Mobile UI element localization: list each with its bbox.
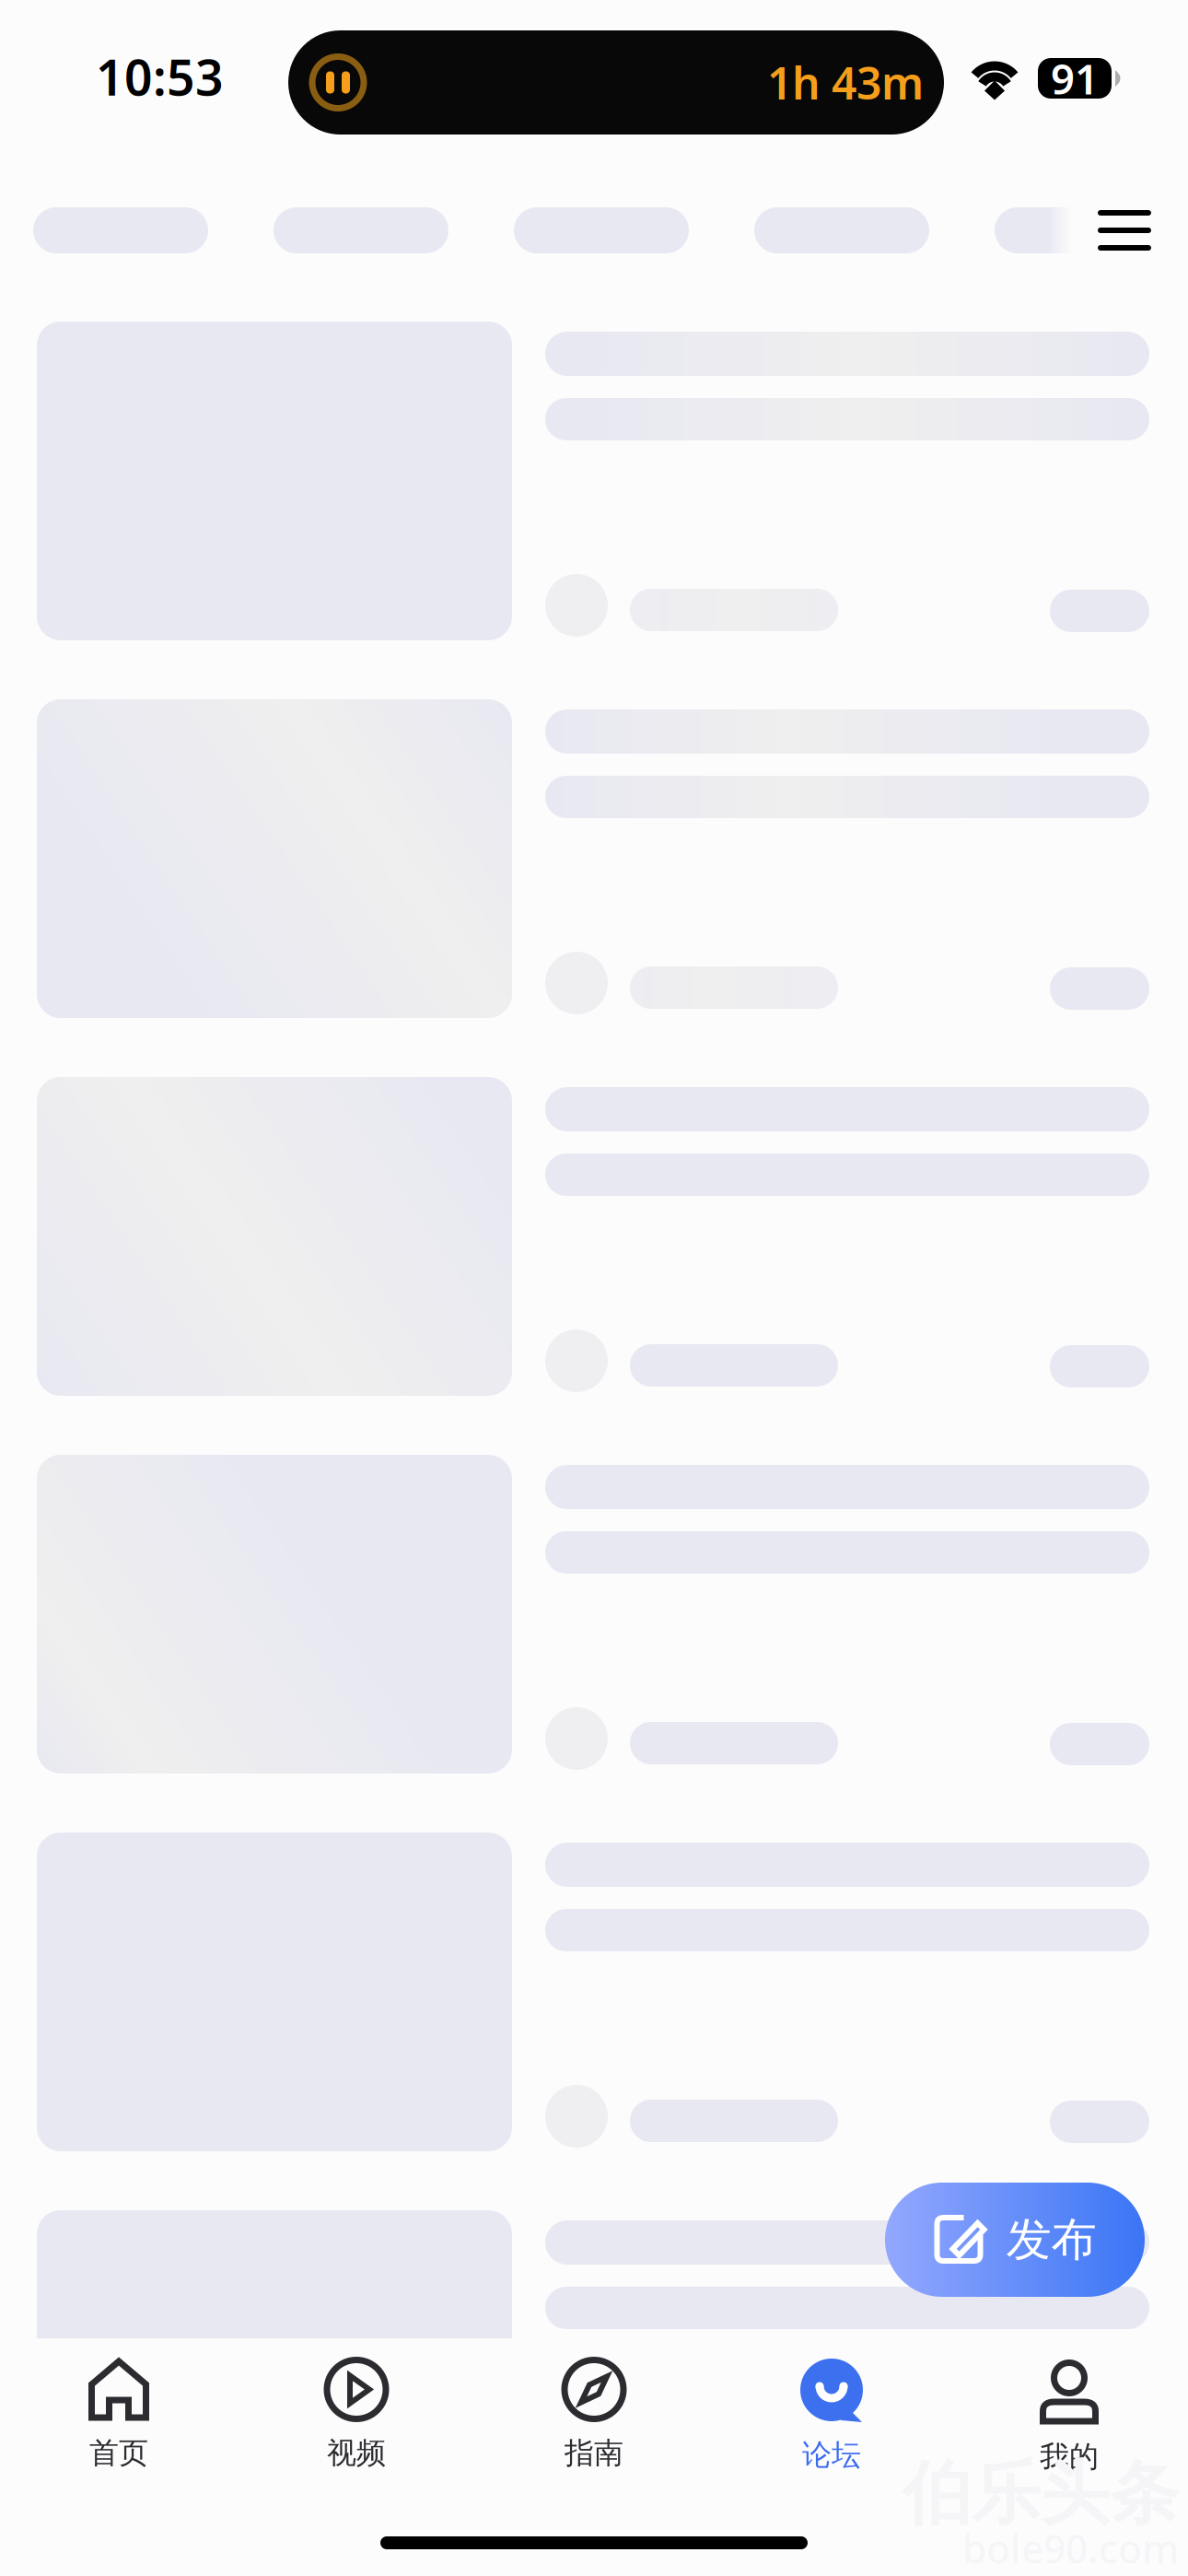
staticText: 视频	[327, 2435, 386, 2471]
button[interactable]: 我的	[950, 2338, 1188, 2523]
button[interactable]	[0, 1077, 1188, 1396]
button[interactable]: 论坛	[713, 2338, 950, 2523]
button[interactable]	[0, 1832, 1188, 2151]
button[interactable]: 视频	[238, 2338, 475, 2523]
button[interactable]	[0, 322, 1188, 640]
staticText: 91	[1051, 51, 1099, 106]
button[interactable]	[0, 699, 1188, 1018]
button[interactable]	[0, 1455, 1188, 1774]
staticText: 1h 43m	[767, 53, 924, 112]
staticText: 我的	[1040, 2439, 1099, 2475]
button[interactable]: 发布	[885, 2183, 1145, 2297]
staticText: 首页	[89, 2435, 148, 2471]
staticText: 发布	[1006, 2212, 1096, 2268]
staticText: 指南	[565, 2435, 623, 2471]
button[interactable]: 指南	[475, 2338, 713, 2523]
staticText: 论坛	[802, 2437, 861, 2473]
staticText: 10:53	[96, 44, 224, 109]
button[interactable]: 首页	[0, 2338, 238, 2523]
staticText: 伯乐头条	[903, 2452, 1179, 2536]
button[interactable]: 菜单	[1074, 183, 1175, 277]
button[interactable]	[0, 2210, 1188, 2529]
